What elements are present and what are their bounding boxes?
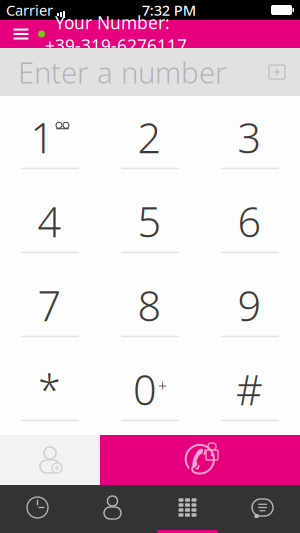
- button[interactable]: 1: [0, 97, 100, 181]
- button[interactable]: Messages: [225, 485, 300, 533]
- button[interactable]: 0: [100, 349, 200, 433]
- staticText: Carrier: [6, 0, 53, 20]
- staticText: *: [38, 362, 61, 417]
- button[interactable]: 2: [100, 97, 200, 181]
- button[interactable]: 5: [100, 181, 200, 265]
- staticText: 6: [237, 194, 261, 249]
- staticText: 3: [237, 110, 261, 165]
- button[interactable]: Keypad: [150, 485, 225, 533]
- staticText: 1: [30, 110, 54, 165]
- staticText: 4: [37, 194, 61, 249]
- staticText: #: [236, 362, 263, 417]
- staticText: +: [158, 375, 167, 396]
- button[interactable]: 4: [0, 181, 100, 265]
- staticText: [53, 2, 56, 18]
- staticText: 2: [137, 110, 161, 165]
- staticText: Enter a number: [18, 52, 227, 91]
- staticText: 0: [133, 362, 157, 417]
- button[interactable]: Contacts: [75, 485, 150, 533]
- button[interactable]: 3: [200, 97, 300, 181]
- button[interactable]: Add contact: [0, 435, 100, 485]
- staticText: 5: [137, 194, 161, 249]
- button[interactable]: #: [200, 349, 300, 433]
- button[interactable]: 9: [200, 265, 300, 349]
- button[interactable]: 7: [0, 265, 100, 349]
- button[interactable]: 6: [200, 181, 300, 265]
- button[interactable]: Secure call: [100, 435, 300, 485]
- staticText: 8: [137, 278, 161, 333]
- staticText: Your Number: +39-319-6276117: [45, 11, 187, 57]
- staticText: 7:32 PM: [142, 0, 196, 20]
- staticText: 7: [37, 278, 61, 333]
- button[interactable]: Menu: [4, 20, 38, 48]
- staticText: 9: [237, 278, 261, 333]
- button[interactable]: Recents: [0, 485, 75, 533]
- button[interactable]: Delete: [260, 57, 294, 87]
- button[interactable]: 8: [100, 265, 200, 349]
- staticText: ✆: [183, 437, 217, 483]
- button[interactable]: *: [0, 349, 100, 433]
